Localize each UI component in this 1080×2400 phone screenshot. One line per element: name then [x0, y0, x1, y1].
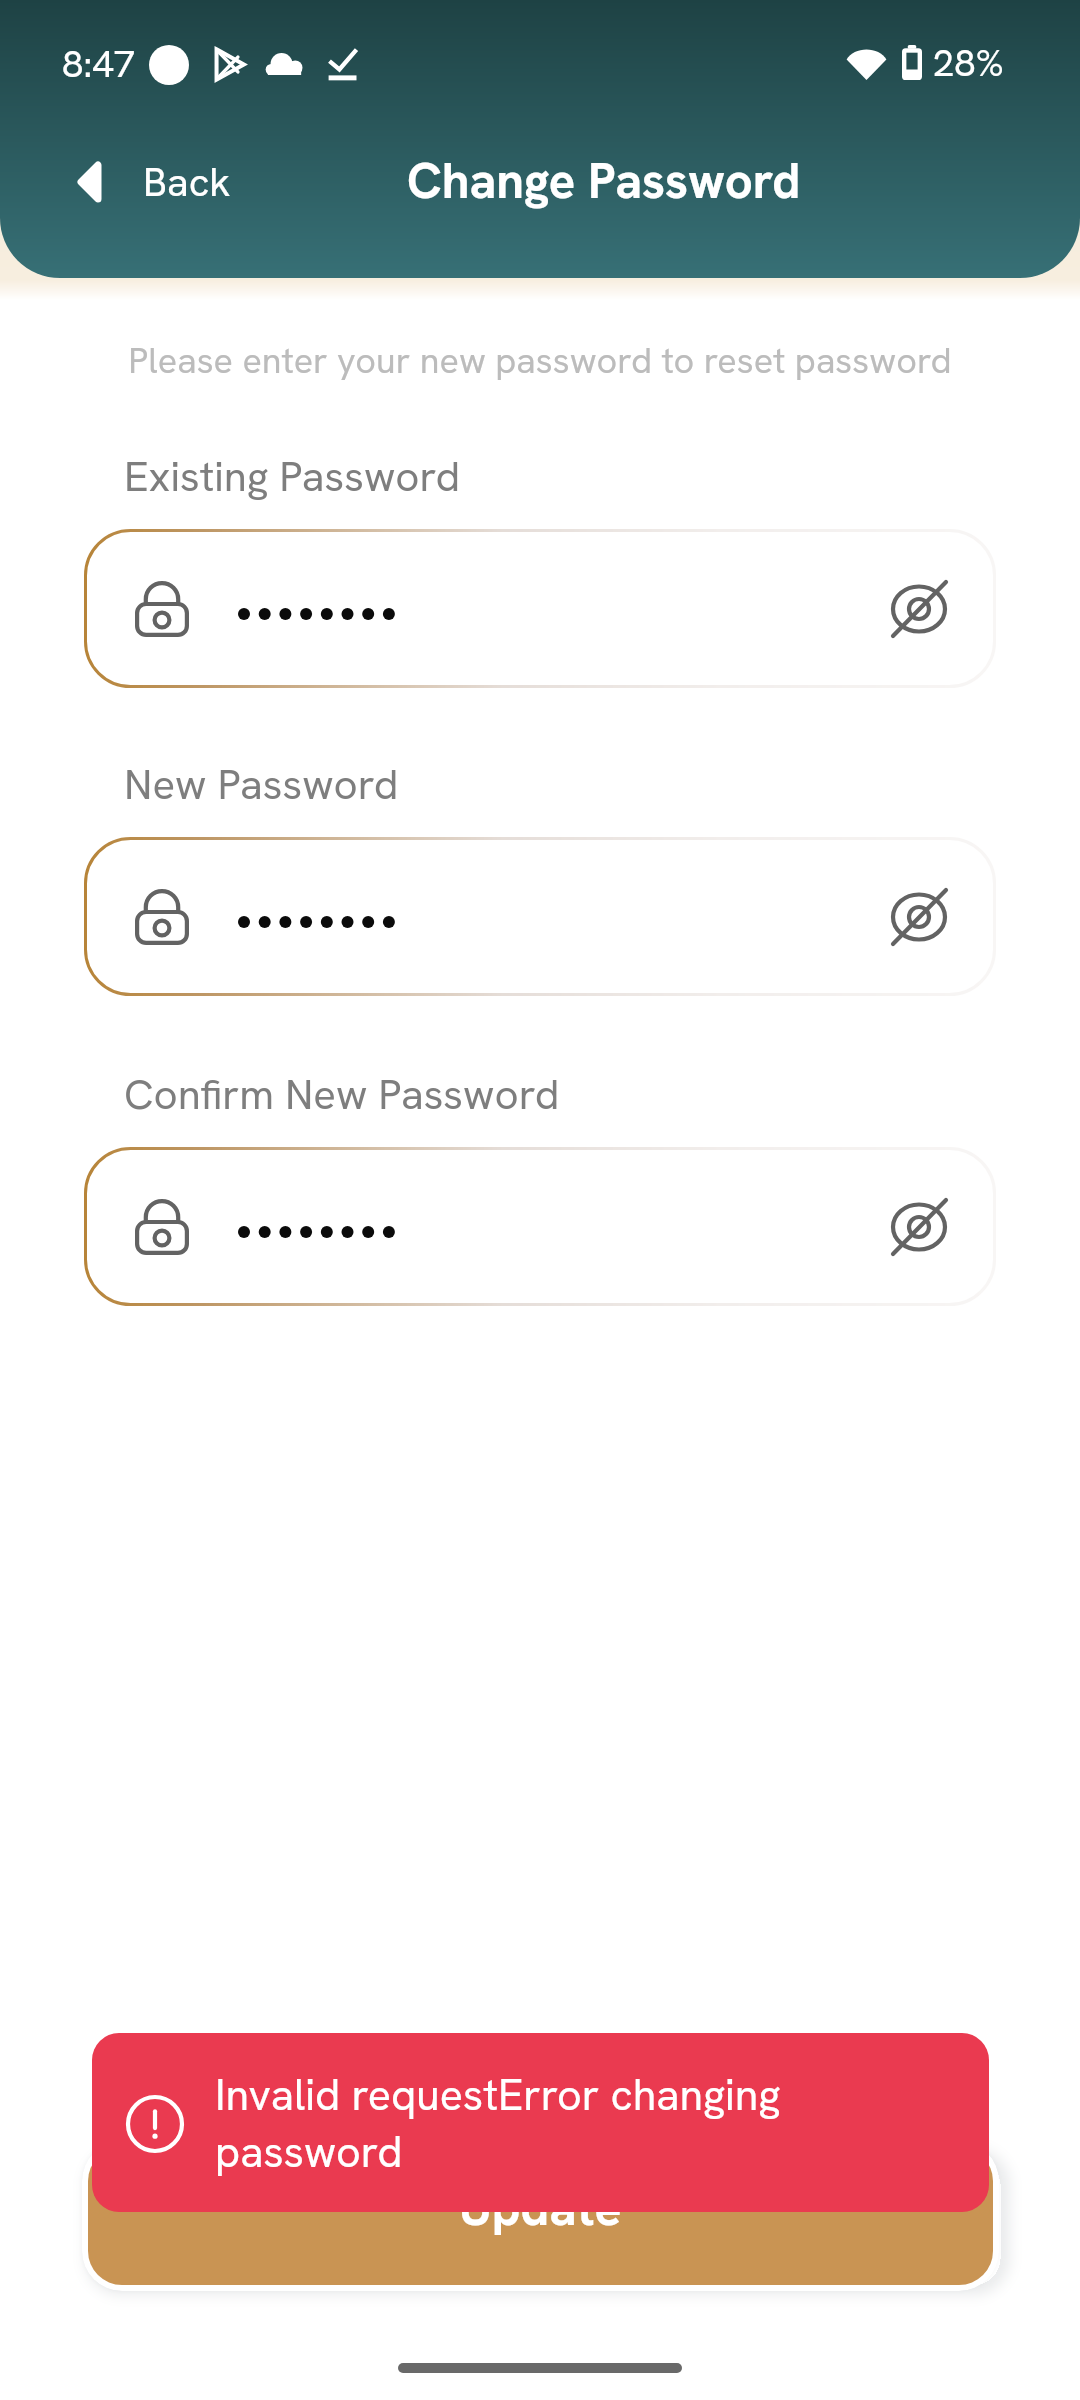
staticText: 8:47	[62, 39, 135, 89]
button[interactable]: Toggle password visibility	[84, 1147, 996, 1306]
button[interactable]: Toggle password visibility	[867, 865, 971, 969]
staticText: Invalid requestError changing password	[215, 2067, 835, 2180]
staticText: New Password	[124, 757, 399, 812]
staticText: Confirm New Password	[124, 1067, 560, 1122]
button[interactable]: Toggle password visibility	[867, 557, 971, 661]
staticText: Update	[459, 2175, 622, 2240]
staticText: Change Password	[407, 149, 801, 213]
staticText: 28%	[933, 38, 1004, 88]
button[interactable]: Update	[88, 2147, 993, 2285]
button[interactable]: Toggle password visibility	[84, 529, 996, 688]
button[interactable]: Back	[60, 144, 255, 220]
button[interactable]: Toggle password visibility	[867, 1175, 971, 1279]
staticText: Please enter your new password to reset …	[128, 337, 952, 384]
button[interactable]: Toggle password visibility	[84, 837, 996, 996]
staticText: Back	[143, 156, 231, 208]
staticText: Existing Password	[124, 449, 461, 504]
